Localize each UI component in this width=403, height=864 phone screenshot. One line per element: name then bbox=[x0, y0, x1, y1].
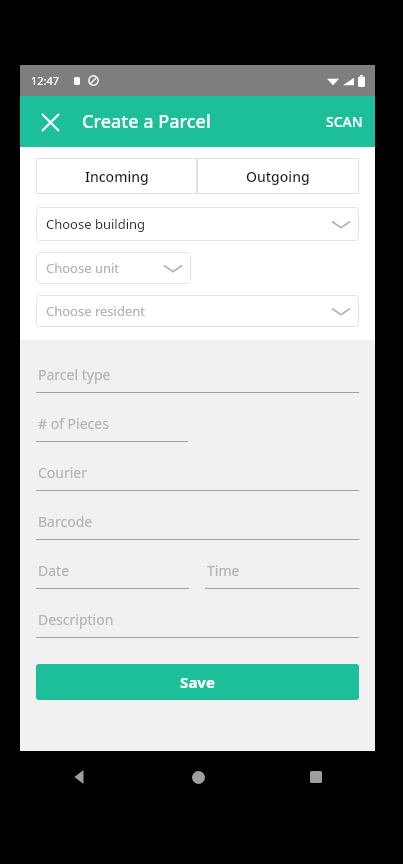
staticText: # of Pieces bbox=[38, 414, 109, 433]
staticText: Courier bbox=[38, 463, 88, 482]
button[interactable]: SCAN bbox=[314, 104, 375, 139]
staticText: Choose unit bbox=[46, 259, 120, 277]
staticText: Create a Parcel bbox=[82, 109, 211, 134]
staticText: Incoming bbox=[85, 167, 149, 186]
button[interactable]: Save bbox=[36, 664, 359, 700]
staticText: Outgoing bbox=[246, 167, 310, 186]
button[interactable]: Date bbox=[36, 561, 189, 589]
button[interactable]: # of Pieces bbox=[36, 414, 359, 442]
button[interactable]: Time bbox=[205, 561, 359, 589]
button[interactable]: Choose resident bbox=[36, 295, 359, 327]
staticText: 12:47 bbox=[31, 73, 60, 88]
button[interactable]: Choose building bbox=[36, 207, 359, 241]
staticText: Date bbox=[38, 561, 70, 580]
button[interactable]: Outgoing bbox=[197, 158, 359, 194]
staticText: Description bbox=[38, 610, 114, 629]
button[interactable]: Close bbox=[30, 102, 70, 142]
button[interactable]: Home bbox=[139, 751, 257, 803]
button[interactable]: Barcode bbox=[36, 512, 359, 540]
staticText: Choose resident bbox=[46, 302, 145, 320]
staticText: Choose building bbox=[46, 215, 146, 233]
staticText: Barcode bbox=[38, 512, 93, 531]
staticText: Save bbox=[180, 672, 215, 692]
staticText: Parcel type bbox=[38, 365, 111, 384]
staticText: SCAN bbox=[326, 112, 363, 131]
button[interactable]: Choose unit bbox=[36, 252, 191, 284]
button[interactable]: Incoming bbox=[36, 158, 197, 194]
button[interactable]: Recent apps bbox=[257, 751, 375, 803]
staticText: Time bbox=[207, 561, 240, 580]
button[interactable]: Parcel type bbox=[36, 365, 359, 393]
button[interactable]: Description bbox=[36, 610, 359, 638]
button[interactable]: Courier bbox=[36, 463, 359, 491]
button[interactable]: Back bbox=[20, 751, 139, 803]
